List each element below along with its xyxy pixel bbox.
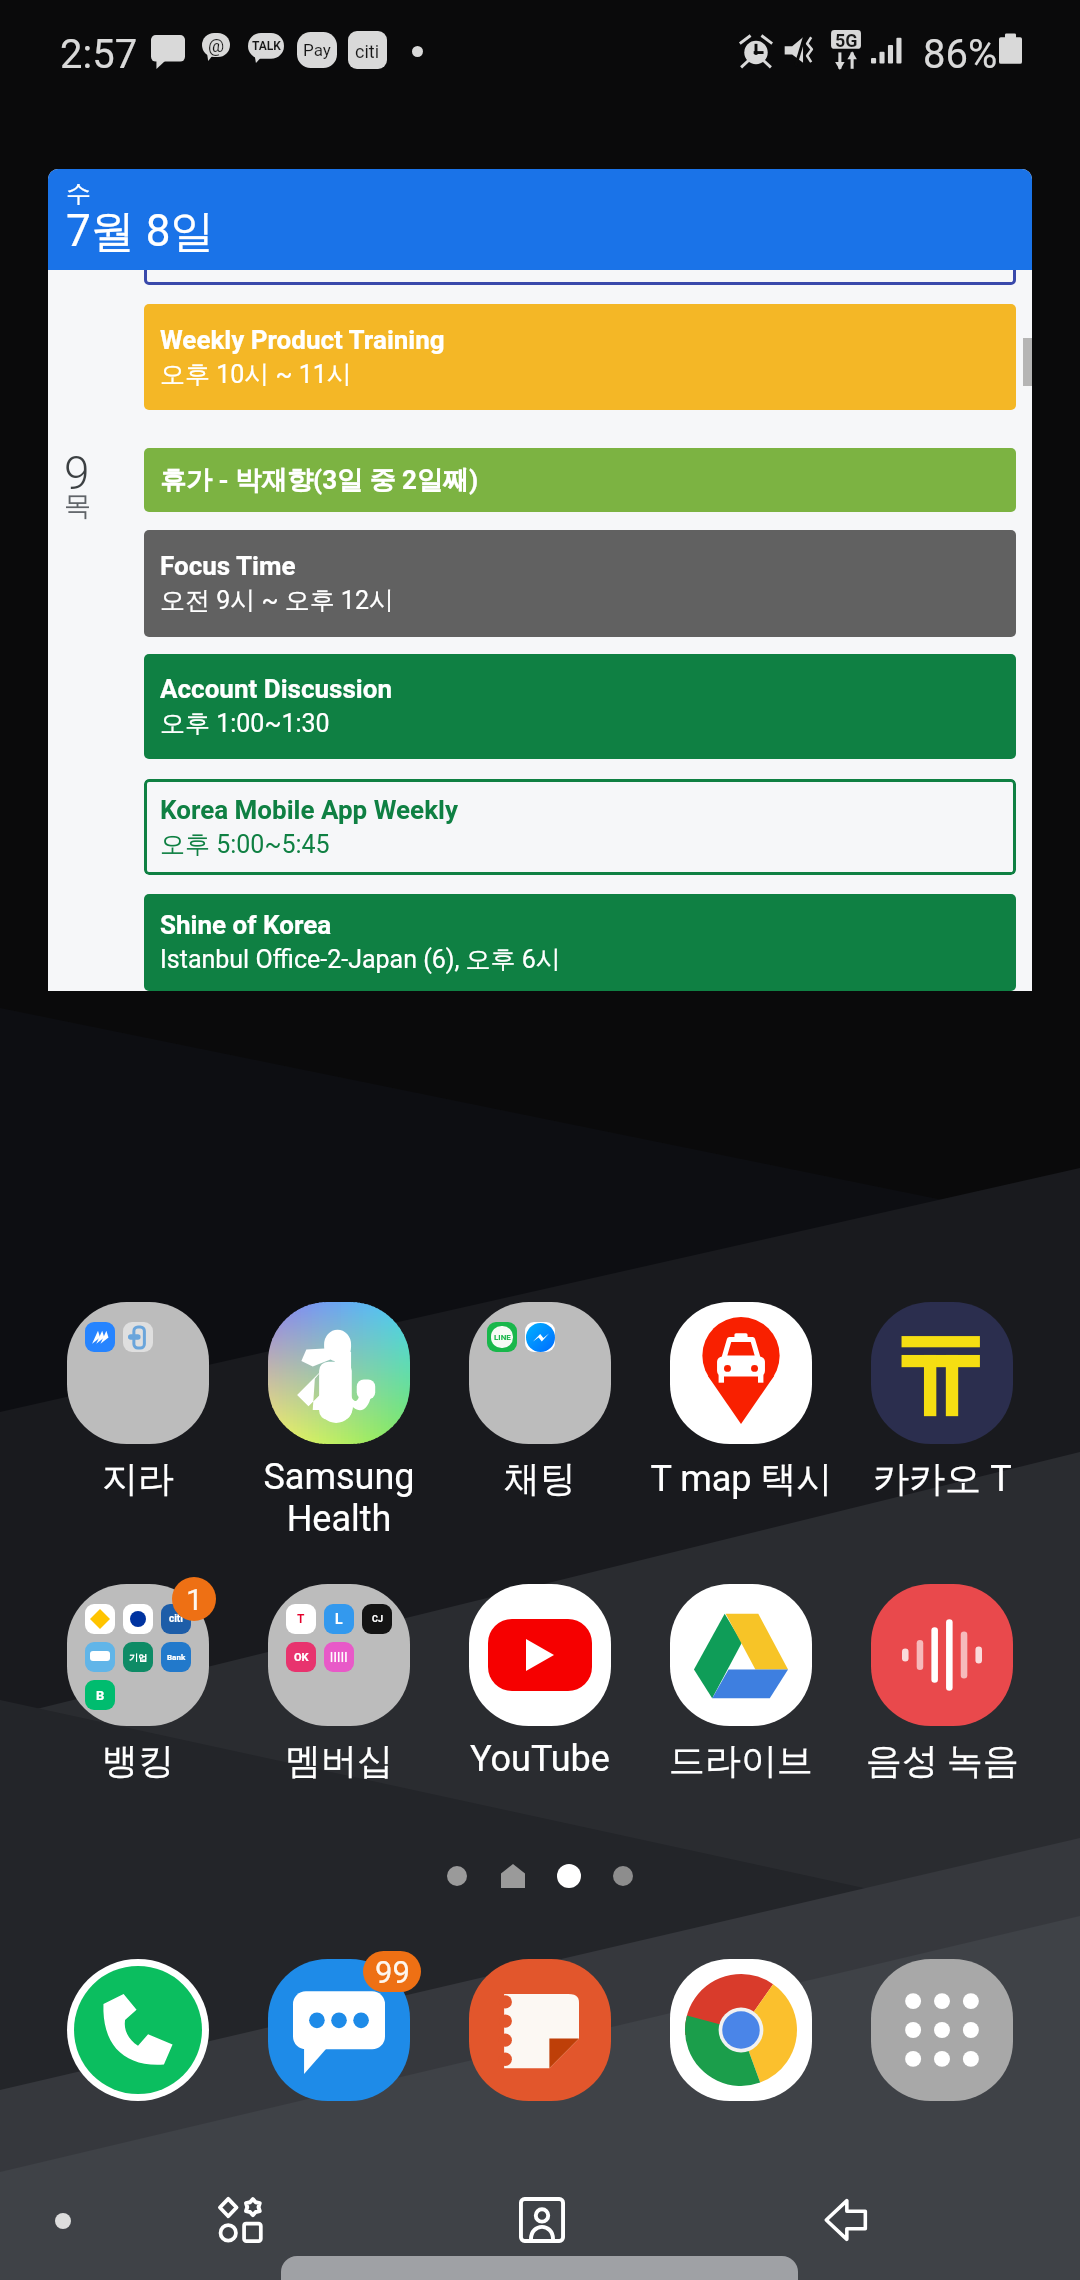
staticText: Shine of Korea [160, 910, 332, 940]
staticText: Focus Time [160, 551, 296, 581]
button[interactable]: 음성 녹음 [844, 1584, 1040, 1783]
staticText: Account Discussion [160, 674, 392, 704]
button[interactable]: Notes [442, 1959, 638, 2101]
staticText: Weekly Product Training [160, 325, 445, 355]
staticText: CJ [372, 1614, 383, 1625]
staticText: TALK [252, 39, 281, 53]
staticText: 1 [186, 1582, 203, 1617]
staticText: YouTube [470, 1738, 610, 1780]
staticText: @ [208, 35, 225, 56]
button[interactable]: Samsung Health [241, 1302, 437, 1540]
staticText: OK [294, 1651, 309, 1664]
staticText: 86% [923, 31, 998, 78]
button[interactable]: T map 택시 [643, 1302, 839, 1501]
button[interactable]: Back [776, 2180, 916, 2260]
button[interactable]: 수 [48, 169, 1032, 991]
staticText: LINE [494, 1333, 511, 1342]
staticText: 7월 8일 [66, 204, 215, 259]
staticText: L [335, 1611, 343, 1627]
button[interactable]: 휴가 - 박재향(3일 중 2일째) [144, 448, 1016, 512]
staticText: 목 [64, 489, 91, 523]
staticText: B [96, 1688, 105, 1703]
staticText: 2:57 [60, 31, 138, 78]
button[interactable]: 카카오 T [844, 1302, 1040, 1501]
staticText: 채팅 [504, 1456, 576, 1501]
staticText: 음성 녹음 [866, 1738, 1019, 1783]
button[interactable]: Home [472, 2180, 612, 2260]
staticText: 오후 5:00~5:45 [160, 829, 330, 860]
staticText: Pay [303, 40, 331, 60]
staticText: 멤버십 [285, 1738, 393, 1783]
button[interactable]: 드라이브 [643, 1584, 839, 1783]
button[interactable]: 지라 [40, 1302, 236, 1501]
staticText: T [297, 1612, 305, 1626]
staticText: 오후 10시 ~ 11시 [160, 359, 352, 390]
button[interactable]: Account Discussion [144, 654, 1016, 759]
staticText: 9 [64, 446, 90, 500]
staticText: T map 택시 [650, 1456, 833, 1501]
button[interactable]: Messages [241, 1959, 437, 2101]
button[interactable]: Focus Time [144, 530, 1016, 637]
button[interactable]: citi [40, 1584, 236, 1783]
staticText: 5G [835, 30, 858, 49]
staticText: 수 [66, 178, 91, 209]
button[interactable]: T [241, 1584, 437, 1783]
staticText: Istanbul Office-2-Japan (6), 오후 6시 [160, 944, 561, 975]
button[interactable]: Shine of Korea [144, 894, 1016, 991]
staticText: Korea Mobile App Weekly [160, 795, 458, 825]
button[interactable]: Recents [172, 2180, 310, 2260]
staticText: 휴가 - 박재향(3일 중 2일째) [160, 464, 479, 497]
staticText: 99 [375, 1954, 410, 1990]
staticText: 기업 [129, 1652, 147, 1663]
staticText: citi [169, 1613, 183, 1625]
staticText: 카카오 T [873, 1456, 1012, 1501]
button[interactable]: Weekly Product Training [144, 304, 1016, 410]
staticText: 뱅킹 [102, 1738, 174, 1783]
button[interactable]: Korea Mobile App Weekly [144, 779, 1016, 875]
button[interactable]: Chrome [643, 1959, 839, 2101]
button[interactable]: LINE [442, 1302, 638, 1501]
staticText: Bank [167, 1653, 186, 1662]
staticText: Samsung Health [263, 1456, 415, 1540]
button[interactable]: YouTube [442, 1584, 638, 1780]
staticText: 지라 [102, 1456, 174, 1501]
staticText: 드라이브 [669, 1738, 813, 1783]
staticText: 오전 9시 ~ 오후 12시 [160, 585, 394, 616]
button[interactable]: Phone [40, 1959, 236, 2101]
staticText: citi [355, 41, 380, 62]
staticText: 오후 1:00~1:30 [160, 708, 330, 739]
button[interactable]: Apps [844, 1959, 1040, 2101]
